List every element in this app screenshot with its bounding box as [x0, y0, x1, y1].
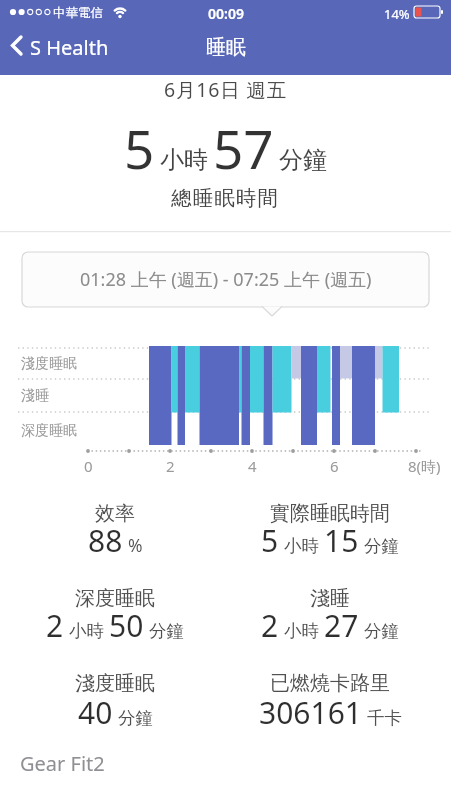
staticText: 88 [88, 520, 123, 561]
staticText: 15 [324, 520, 359, 561]
staticText: % [128, 533, 143, 557]
staticText: 小時 [69, 620, 104, 642]
staticText: 6月16日 週五 [164, 76, 287, 103]
staticText: 分鐘 [279, 145, 327, 175]
button[interactable]: 淺度睡眠 [15, 671, 215, 712]
staticText: 分鐘 [364, 620, 399, 642]
staticText: 睡眠 [206, 35, 246, 60]
staticText: 4 [248, 456, 257, 476]
staticText: 57 [213, 112, 274, 184]
staticText: 27 [324, 605, 359, 646]
staticText: 40 [78, 692, 113, 733]
staticText: 淺度睡眠 [75, 671, 155, 696]
staticText: 淺睡 [21, 387, 49, 405]
staticText: 淺睡 [310, 586, 350, 611]
staticText: 01:28 上午 (週五) - 07:25 上午 (週五) [80, 267, 372, 292]
staticText: 已燃燒卡路里 [270, 671, 390, 696]
staticText: 實際睡眠時間 [270, 501, 390, 526]
staticText: 深度睡眠 [75, 586, 155, 611]
staticText: 深度睡眠 [21, 422, 77, 440]
staticText: 50 [109, 605, 144, 646]
staticText: 分鐘 [364, 535, 399, 557]
staticText: 306161 [259, 692, 362, 733]
staticText: 中華電信 [53, 5, 103, 21]
staticText: 分鐘 [149, 620, 184, 642]
staticText: 淺度睡眠 [21, 355, 77, 373]
staticText: 0 [84, 456, 93, 476]
staticText: 2 [46, 605, 64, 646]
button[interactable]: 01:28 上午 (週五) - 07:25 上午 (週五) [22, 252, 429, 307]
staticText: Gear Fit2 [20, 750, 105, 777]
staticText: 小時 [284, 535, 319, 557]
staticText: 8(時) [408, 456, 441, 476]
button[interactable]: 已燃燒卡路里 [230, 671, 430, 712]
button[interactable]: 實際睡眠時間 [230, 501, 430, 542]
button[interactable]: S Health [6, 30, 136, 64]
staticText: 小時 [160, 145, 208, 175]
staticText: 6 [330, 456, 339, 476]
staticText: 5 [261, 520, 279, 561]
staticText: 分鐘 [118, 707, 153, 729]
staticText: 00:09 [208, 4, 244, 23]
staticText: 效率 [95, 501, 135, 526]
staticText: 14% [384, 5, 410, 23]
button[interactable]: 效率 [15, 501, 215, 542]
staticText: 總睡眠時間 [171, 185, 280, 211]
staticText: 2 [261, 605, 279, 646]
staticText: 小時 [284, 620, 319, 642]
staticText: 千卡 [367, 707, 402, 729]
button[interactable]: 淺睡 [230, 586, 430, 627]
staticText: 2 [166, 456, 175, 476]
staticText: 5 [124, 112, 155, 184]
staticText: S Health [30, 34, 109, 61]
button[interactable]: 深度睡眠 [15, 586, 215, 627]
